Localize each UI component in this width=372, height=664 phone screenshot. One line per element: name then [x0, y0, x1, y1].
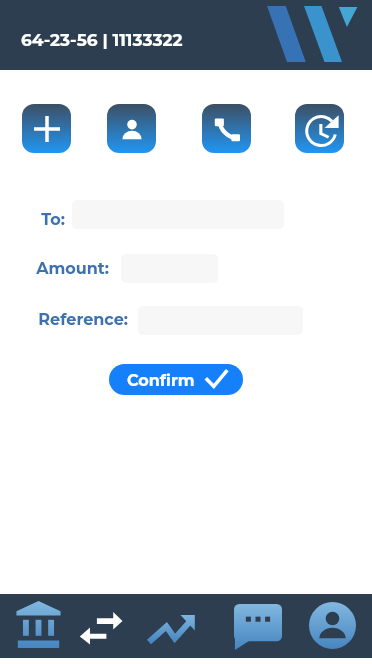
button[interactable]: Profile — [301, 594, 364, 658]
button[interactable]: Accounts — [8, 594, 69, 658]
button[interactable]: Trends — [139, 594, 204, 658]
button[interactable]: Add payee — [22, 104, 71, 153]
staticText: To: — [0, 210, 65, 230]
button[interactable]: Call — [202, 104, 251, 153]
button[interactable]: Contacts — [107, 104, 156, 153]
button[interactable]: Transfer — [71, 594, 131, 658]
staticText: Amount: — [0, 259, 109, 279]
staticText: Confirm — [127, 371, 195, 391]
button[interactable]: Confirm — [109, 364, 243, 395]
staticText: Reference: — [8, 310, 128, 330]
button[interactable]: Recent — [295, 104, 344, 153]
button[interactable]: Messages — [226, 594, 290, 658]
staticText: 64-23-56 | 11133322 — [21, 30, 183, 51]
